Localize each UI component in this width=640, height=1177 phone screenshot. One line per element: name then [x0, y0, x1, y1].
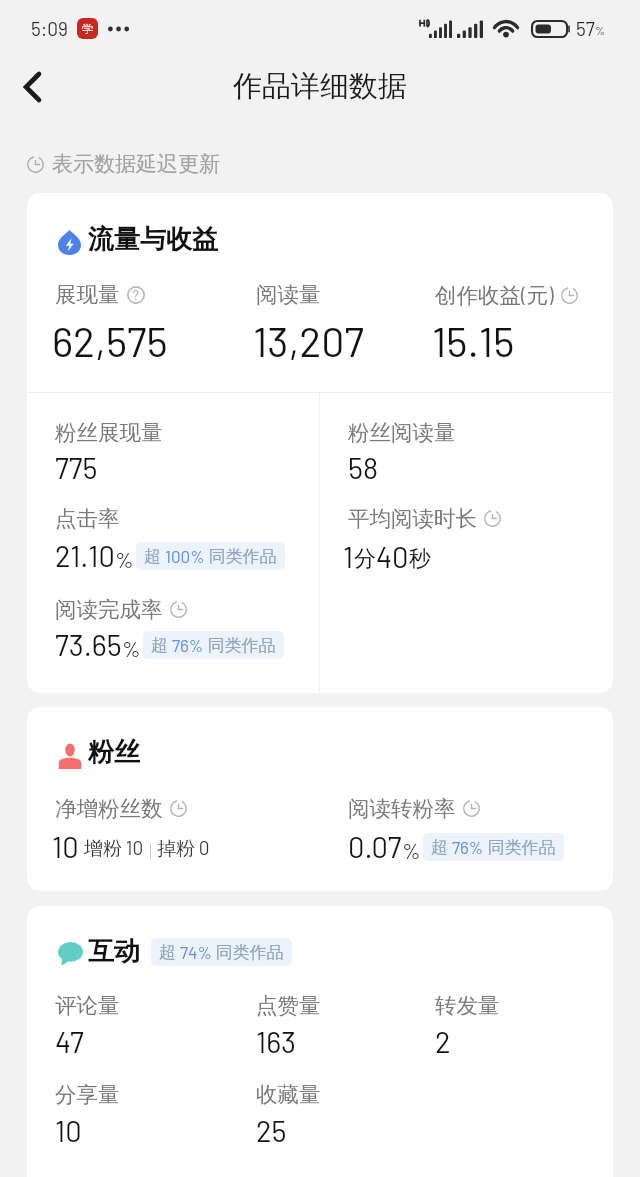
staticText: ?: [133, 287, 139, 303]
staticText: 点赞量: [256, 992, 321, 1019]
staticText: 76%: [172, 635, 204, 655]
staticText: %: [402, 837, 421, 863]
staticText: 2: [435, 1024, 451, 1059]
staticText: %: [122, 635, 141, 661]
staticText: 10: [55, 1113, 82, 1148]
staticText: 分: [354, 545, 376, 573]
staticText: 流量与收益: [88, 223, 218, 256]
staticText: 超: [151, 634, 172, 656]
button[interactable]: Back: [4, 56, 60, 118]
staticText: 同类作品: [204, 634, 276, 656]
staticText: 超: [159, 941, 180, 963]
staticText: 净增粉丝数: [55, 795, 163, 822]
staticText: 掉粉 0: [157, 836, 210, 861]
staticText: %: [115, 546, 134, 572]
staticText: 10: [52, 829, 79, 864]
staticText: 展现量: [55, 281, 120, 308]
staticText: 13,207: [253, 316, 364, 365]
staticText: 收藏量: [256, 1081, 321, 1108]
staticText: 粉丝: [88, 736, 140, 769]
staticText: 作品详细数据: [233, 68, 407, 105]
staticText: 点击率: [55, 505, 120, 532]
staticText: 秒: [409, 545, 431, 573]
staticText: 0.07: [348, 829, 402, 864]
staticText: 1: [343, 539, 354, 574]
staticText: 互动: [88, 935, 140, 968]
staticText: 163: [256, 1024, 297, 1059]
staticText: 76%: [452, 837, 484, 857]
staticText: 40: [376, 539, 409, 574]
staticText: 表示数据延迟更新: [52, 151, 220, 177]
staticText: 阅读完成率: [55, 596, 163, 623]
staticText: 57: [576, 17, 595, 40]
staticText: 74%: [180, 942, 212, 962]
staticText: 100%: [165, 546, 205, 566]
staticText: 62,575: [52, 316, 168, 365]
staticText: %: [595, 23, 606, 37]
staticText: 同类作品: [205, 545, 277, 567]
staticText: 5:09: [31, 17, 68, 40]
staticText: 粉丝展现量: [55, 419, 163, 446]
staticText: 超: [144, 545, 165, 567]
staticText: 分享量: [55, 1081, 120, 1108]
staticText: 创作收益(元): [435, 281, 554, 309]
staticText: 同类作品: [212, 941, 284, 963]
staticText: 转发量: [435, 992, 500, 1019]
staticText: 增粉 10: [84, 836, 144, 861]
staticText: 73.65: [55, 627, 122, 662]
staticText: 阅读量: [256, 281, 321, 308]
staticText: 25: [256, 1113, 287, 1148]
staticText: 同类作品: [484, 836, 556, 858]
staticText: 47: [55, 1024, 84, 1059]
staticText: 学: [82, 22, 93, 36]
staticText: 15.15: [432, 316, 515, 365]
staticText: 21.10: [55, 538, 115, 573]
staticText: 阅读转粉率: [348, 795, 456, 822]
staticText: 58: [348, 450, 379, 485]
staticText: 平均阅读时长: [348, 505, 477, 532]
staticText: 超: [431, 836, 452, 858]
staticText: 评论量: [55, 992, 120, 1019]
staticText: 775: [55, 450, 98, 485]
staticText: 粉丝阅读量: [348, 419, 456, 446]
